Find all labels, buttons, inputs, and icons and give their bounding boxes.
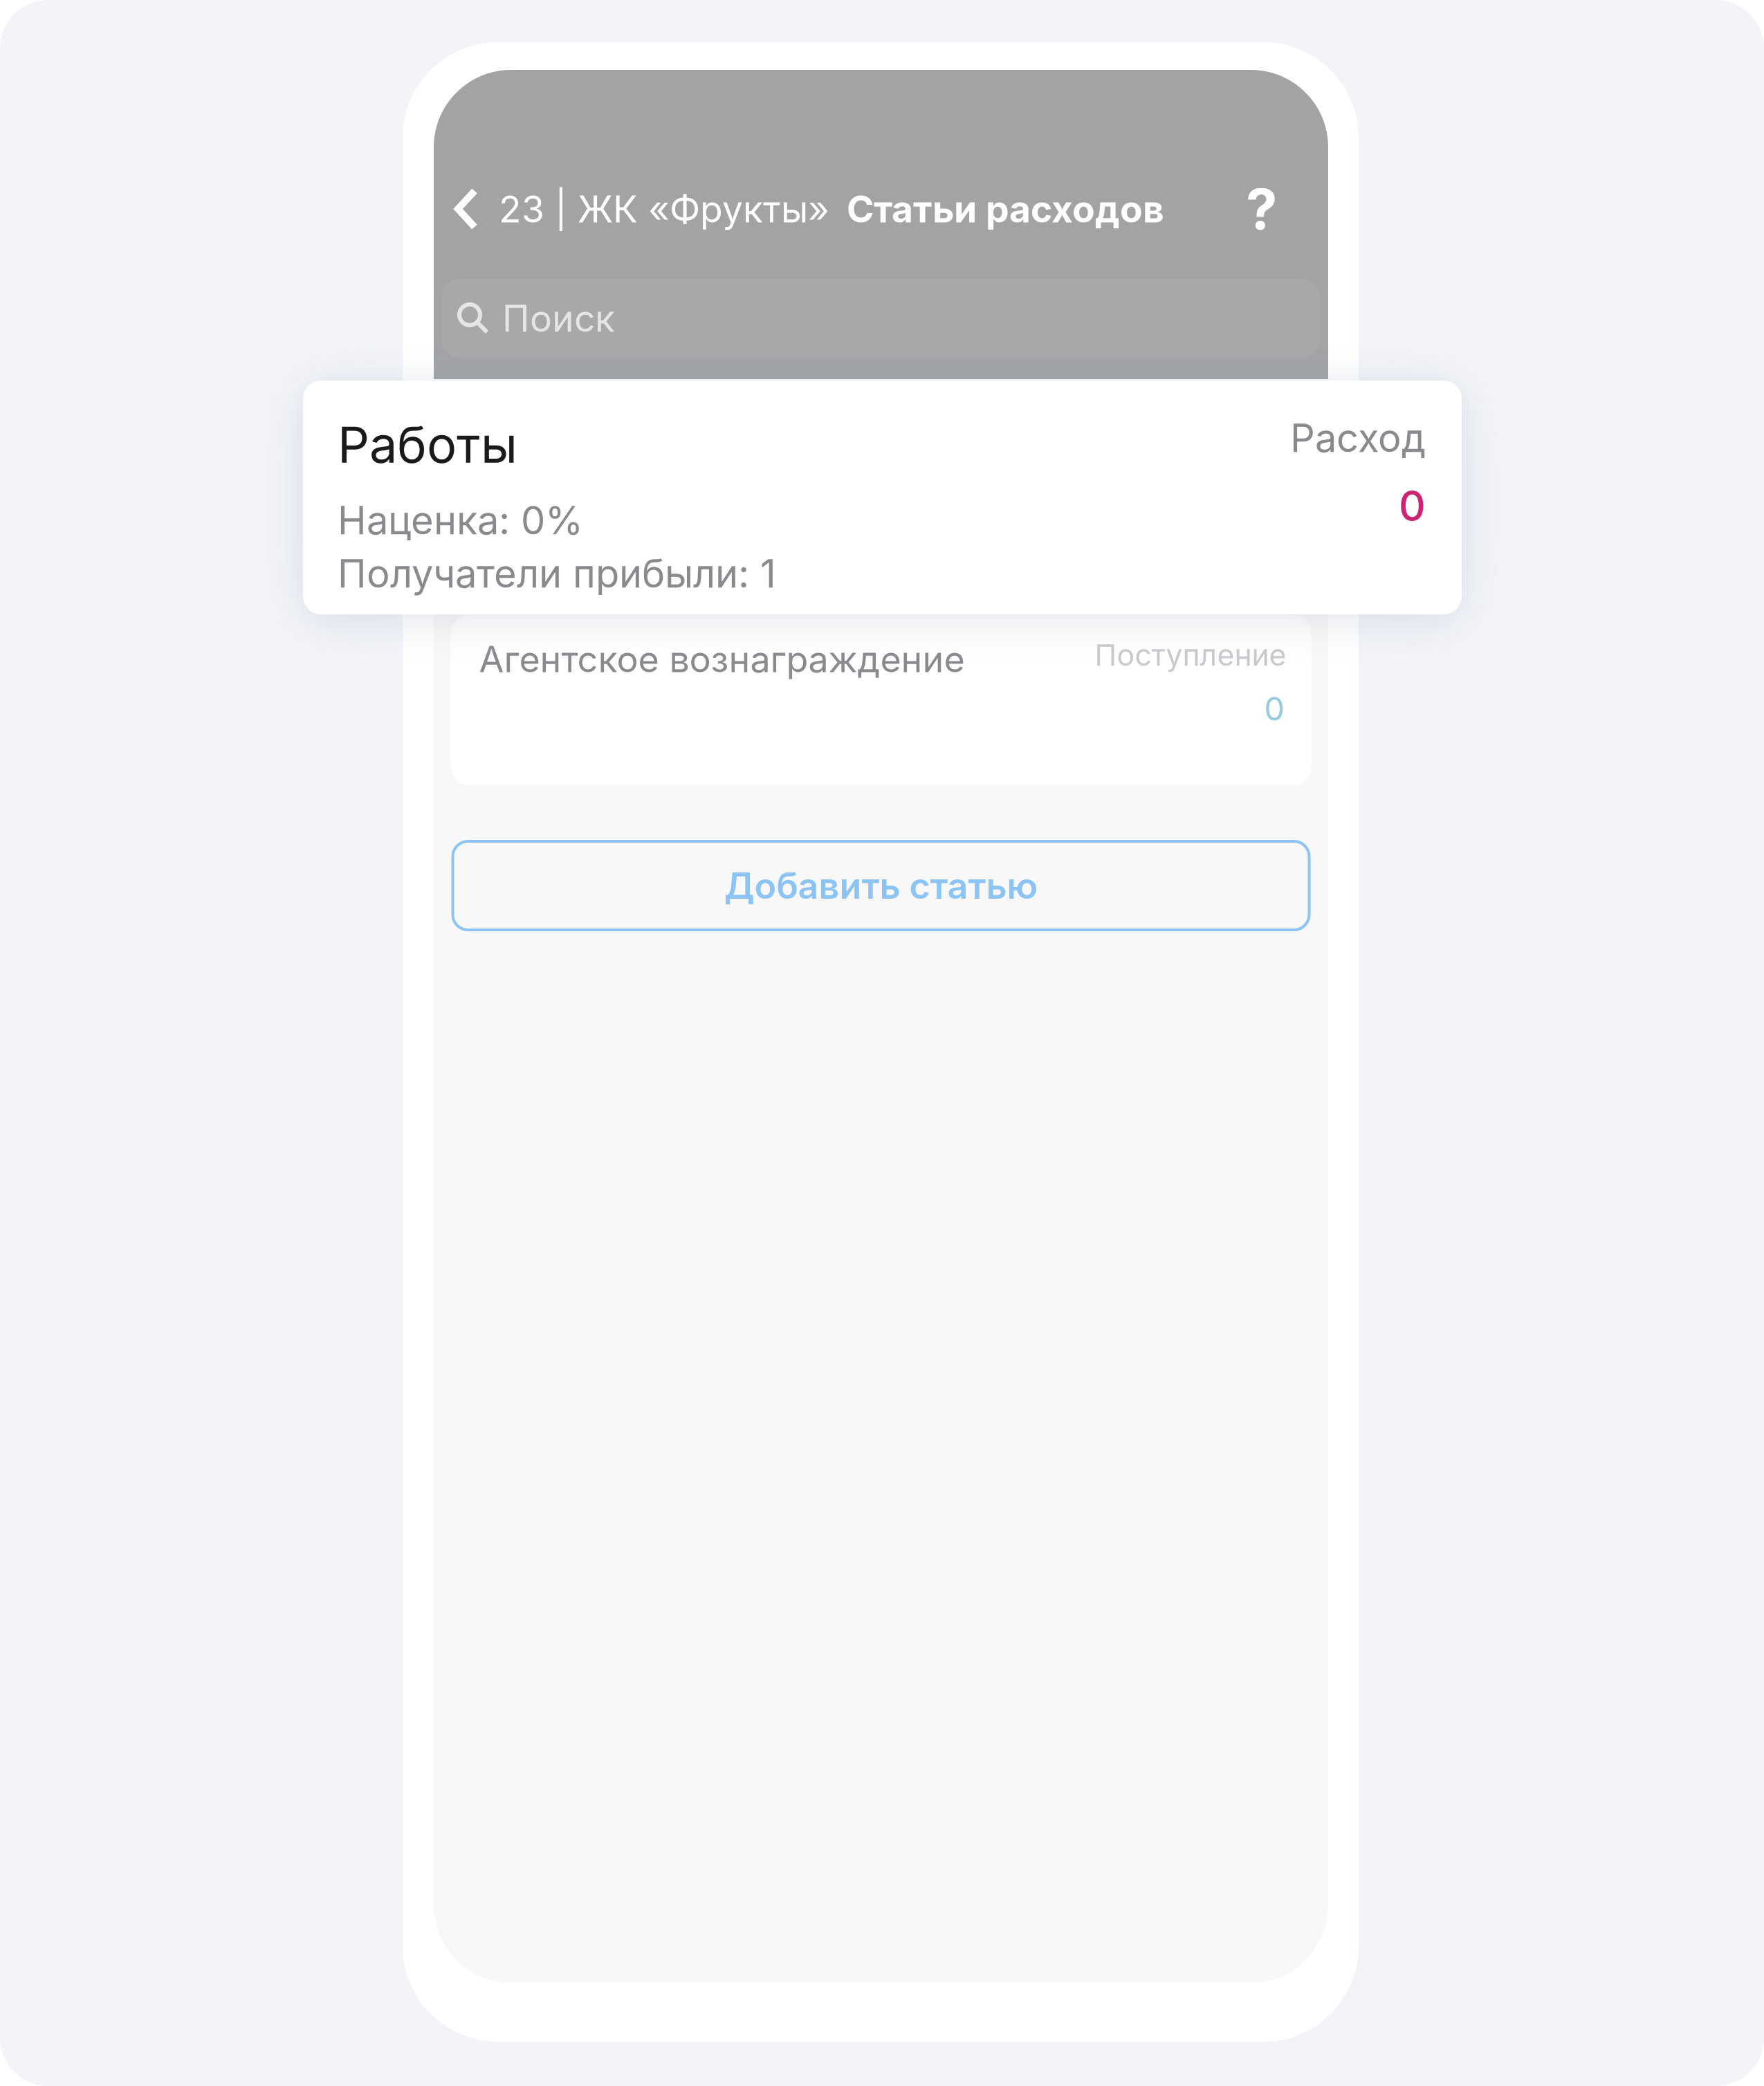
button[interactable]: Добавить статью	[453, 841, 1309, 930]
staticText: Получатели прибыли: 1	[338, 550, 776, 597]
staticText: 0	[1264, 689, 1284, 728]
staticText: Статьи расходов	[847, 187, 1164, 231]
button[interactable]: Назад	[434, 176, 836, 242]
staticText: Расход	[1290, 414, 1426, 461]
staticText: Работы	[338, 414, 517, 475]
staticText: Агентское вознаграждение	[479, 637, 965, 681]
staticText: 23 | ЖК «Фрукты»	[499, 187, 829, 231]
button[interactable]: Работы	[303, 381, 1462, 614]
button[interactable]: Поиск	[441, 279, 1320, 358]
staticText: Поступление	[1095, 637, 1286, 673]
staticText: Наценка: 0%	[338, 497, 583, 544]
staticText: Добавить статью	[724, 864, 1038, 907]
staticText: 0	[1399, 481, 1426, 531]
button[interactable]: Агентское вознаграждение	[451, 615, 1311, 785]
staticText: Поиск	[502, 296, 615, 341]
button[interactable]: Помощь	[1229, 176, 1295, 242]
staticText: ?	[1246, 175, 1278, 243]
